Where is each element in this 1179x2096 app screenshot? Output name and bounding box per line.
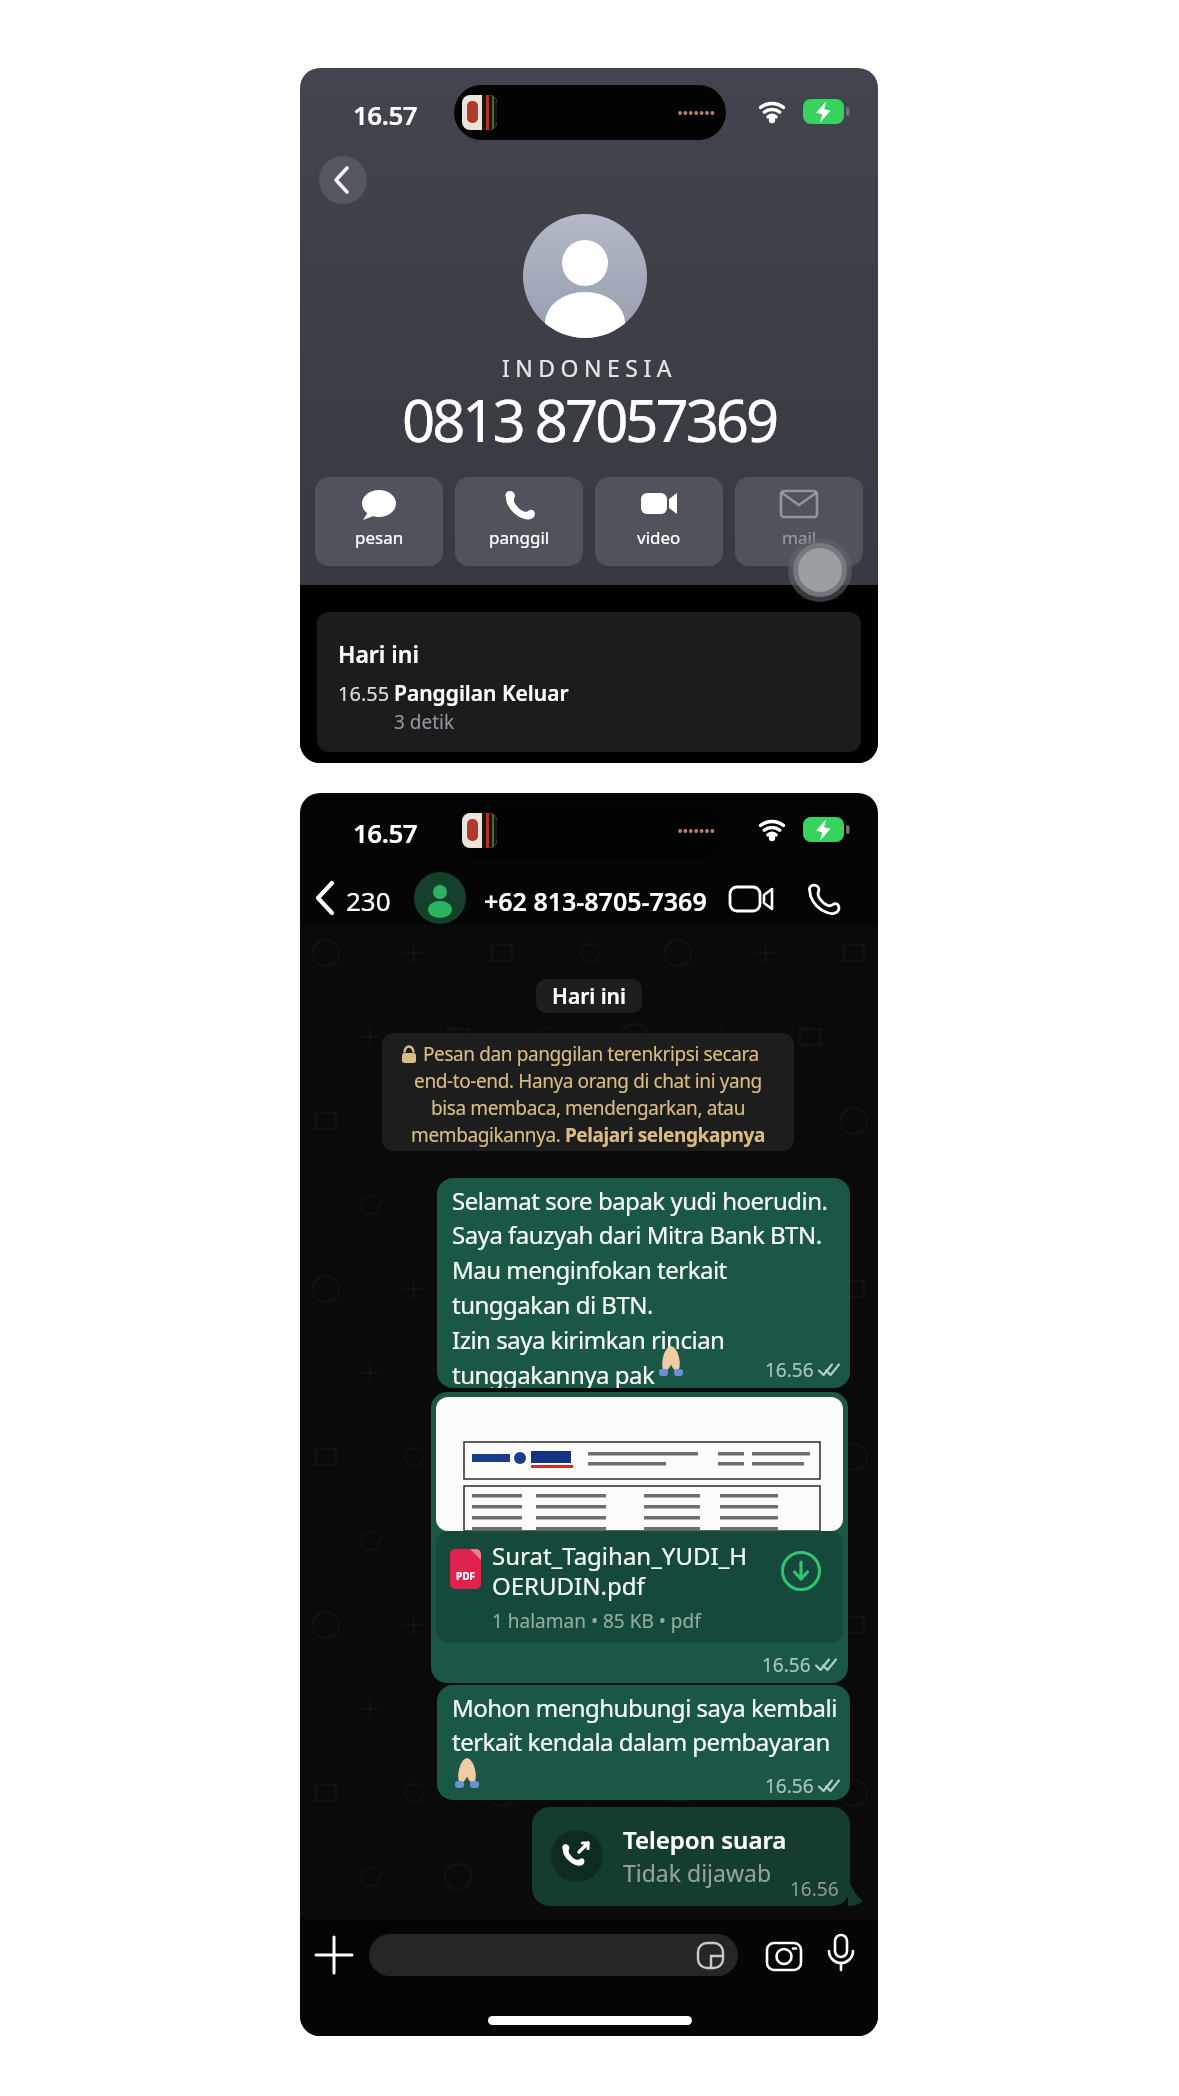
staticText: pesan	[355, 526, 404, 549]
staticText: Surat_Tagihan_YUDI_H OERUDIN.pdf	[492, 1539, 748, 1602]
staticText: 3 detik	[394, 709, 455, 735]
staticText: Selamat sore bapak yudi hoerudin. Saya f…	[452, 1184, 828, 1388]
staticText: 230	[346, 883, 391, 918]
staticText: Telepon suara	[623, 1823, 787, 1856]
staticText: +62 813-8705-7369	[484, 884, 707, 918]
staticText: 16.56	[790, 1876, 839, 1902]
button[interactable]	[827, 1935, 855, 1975]
button[interactable]: Hari ini	[317, 612, 861, 752]
staticText: Tidak dijawab	[623, 1857, 772, 1888]
staticText: Hari ini	[552, 982, 626, 1011]
staticText: INDONESIA	[502, 352, 677, 383]
staticText: PDF	[456, 1569, 476, 1583]
button[interactable]: PDF	[436, 1531, 843, 1643]
staticText: mail	[782, 526, 817, 549]
button[interactable]: video	[595, 477, 723, 566]
staticText: Hari ini	[338, 638, 420, 669]
button[interactable]	[316, 1937, 352, 1973]
button[interactable]	[766, 1939, 804, 1971]
button[interactable]	[729, 886, 775, 912]
staticText: 16.57	[353, 815, 418, 850]
staticText: 16.56	[765, 1773, 814, 1799]
button[interactable]	[319, 156, 367, 204]
staticText: 16.55	[338, 680, 390, 707]
staticText: Panggilan Keluar	[394, 679, 569, 708]
staticText: 16.56	[762, 1652, 811, 1678]
staticText: video	[637, 526, 681, 549]
button[interactable]: mail	[735, 477, 863, 566]
staticText: 16.56	[765, 1357, 814, 1383]
button[interactable]	[315, 881, 337, 915]
staticText: Pesan dan panggilan terenkripsi secara	[423, 1041, 759, 1067]
button[interactable]	[805, 882, 841, 918]
button[interactable]	[781, 1551, 821, 1591]
button[interactable]: panggil	[455, 477, 583, 566]
button[interactable]	[414, 872, 466, 924]
staticText: 16.57	[353, 97, 418, 132]
button[interactable]: pesan	[315, 477, 443, 566]
staticText: Mohon menghubungi saya kembali terkait k…	[452, 1691, 837, 1759]
button[interactable]	[369, 1934, 738, 1976]
button[interactable]: Telepon suara	[532, 1807, 850, 1906]
staticText: 0813 87057369	[402, 380, 777, 459]
staticText: 1 halaman • 85 KB • pdf	[492, 1608, 701, 1634]
staticText: end-to-end. Hanya orang di chat ini yang…	[388, 1068, 788, 1148]
staticText: panggil	[489, 526, 550, 549]
